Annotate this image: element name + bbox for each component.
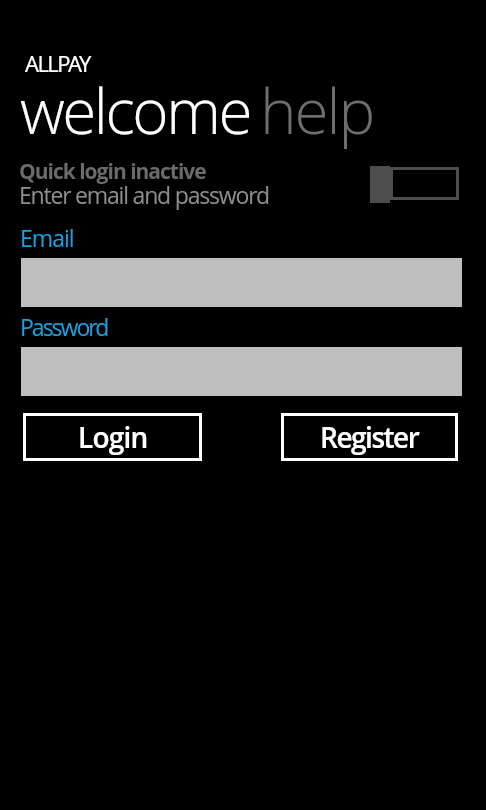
staticText: Quick login inactive [19, 157, 206, 186]
staticText: Enter email and password [19, 179, 269, 210]
staticText: Email [20, 222, 74, 253]
staticText: Login [78, 418, 148, 456]
staticText: welcome [20, 68, 250, 152]
staticText: help [260, 68, 374, 152]
button[interactable]: Login [23, 413, 202, 461]
button[interactable] [390, 167, 459, 200]
staticText: ALLPAY [25, 48, 90, 78]
staticText: Register [320, 418, 419, 456]
staticText: Password [20, 311, 108, 342]
button[interactable]: Register [281, 413, 458, 461]
